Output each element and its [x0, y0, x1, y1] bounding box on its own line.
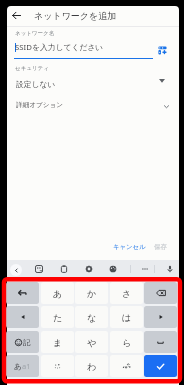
- button[interactable]: 前へ: [10, 264, 22, 276]
- button[interactable]: [144, 306, 177, 328]
- button[interactable]: ら: [110, 331, 143, 353]
- button[interactable]: あ: [41, 282, 74, 304]
- staticText: 設定しない: [16, 79, 56, 89]
- button[interactable]: [144, 282, 177, 304]
- button[interactable]: [41, 355, 74, 377]
- button[interactable]: や: [75, 331, 108, 353]
- button[interactable]: 保存: [152, 240, 169, 253]
- staticText: 詳細オプション: [16, 101, 63, 109]
- button[interactable]: 設定しない: [7, 77, 179, 92]
- button[interactable]: 設定: [82, 262, 95, 275]
- staticText: ネットワーク名: [15, 30, 55, 37]
- button[interactable]: 音声入力: [163, 262, 176, 275]
- button[interactable]: [6, 306, 39, 328]
- staticText: セキュリティ: [15, 65, 49, 72]
- button[interactable]: クリップボード: [57, 262, 70, 275]
- staticText: は: [122, 312, 132, 323]
- staticText: や: [87, 337, 97, 348]
- staticText: 保存: [154, 243, 167, 251]
- button[interactable]: か: [75, 282, 108, 304]
- staticText: な: [87, 312, 97, 323]
- staticText: キャンセル: [113, 243, 146, 251]
- button[interactable]: た: [41, 306, 74, 328]
- button[interactable]: 戻る: [8, 7, 25, 24]
- staticText: さ: [122, 288, 132, 299]
- staticText: ま: [53, 337, 63, 348]
- button[interactable]: な: [75, 306, 108, 328]
- button[interactable]: は: [110, 306, 143, 328]
- staticText: ネットワークを追加: [34, 10, 117, 21]
- button[interactable]: ま: [41, 331, 74, 353]
- staticText: あ: [53, 288, 63, 299]
- staticText: か: [87, 288, 97, 299]
- button[interactable]: [144, 355, 177, 377]
- staticText: 記: [23, 338, 31, 347]
- staticText: あ: [14, 362, 22, 371]
- button[interactable]: その他: [138, 262, 151, 275]
- staticText: ら: [122, 337, 132, 348]
- button[interactable]: ステッカー: [32, 262, 45, 275]
- button[interactable]: [6, 282, 39, 304]
- button[interactable]: [110, 355, 143, 377]
- button[interactable]: テーマ: [106, 262, 119, 275]
- button[interactable]: 詳細オプション: [7, 100, 179, 115]
- staticText: a1: [22, 361, 31, 371]
- button[interactable]: あ: [6, 355, 39, 377]
- staticText: わ: [87, 361, 97, 372]
- button[interactable]: 記: [6, 331, 39, 353]
- button[interactable]: [144, 331, 177, 353]
- button[interactable]: さ: [110, 282, 143, 304]
- button[interactable]: わ: [75, 355, 108, 377]
- button[interactable]: キャンセル: [111, 240, 148, 253]
- staticText: た: [53, 312, 63, 323]
- staticText: SSIDを入力してください: [15, 42, 104, 53]
- button[interactable]: QRコードをスキャン: [156, 44, 169, 57]
